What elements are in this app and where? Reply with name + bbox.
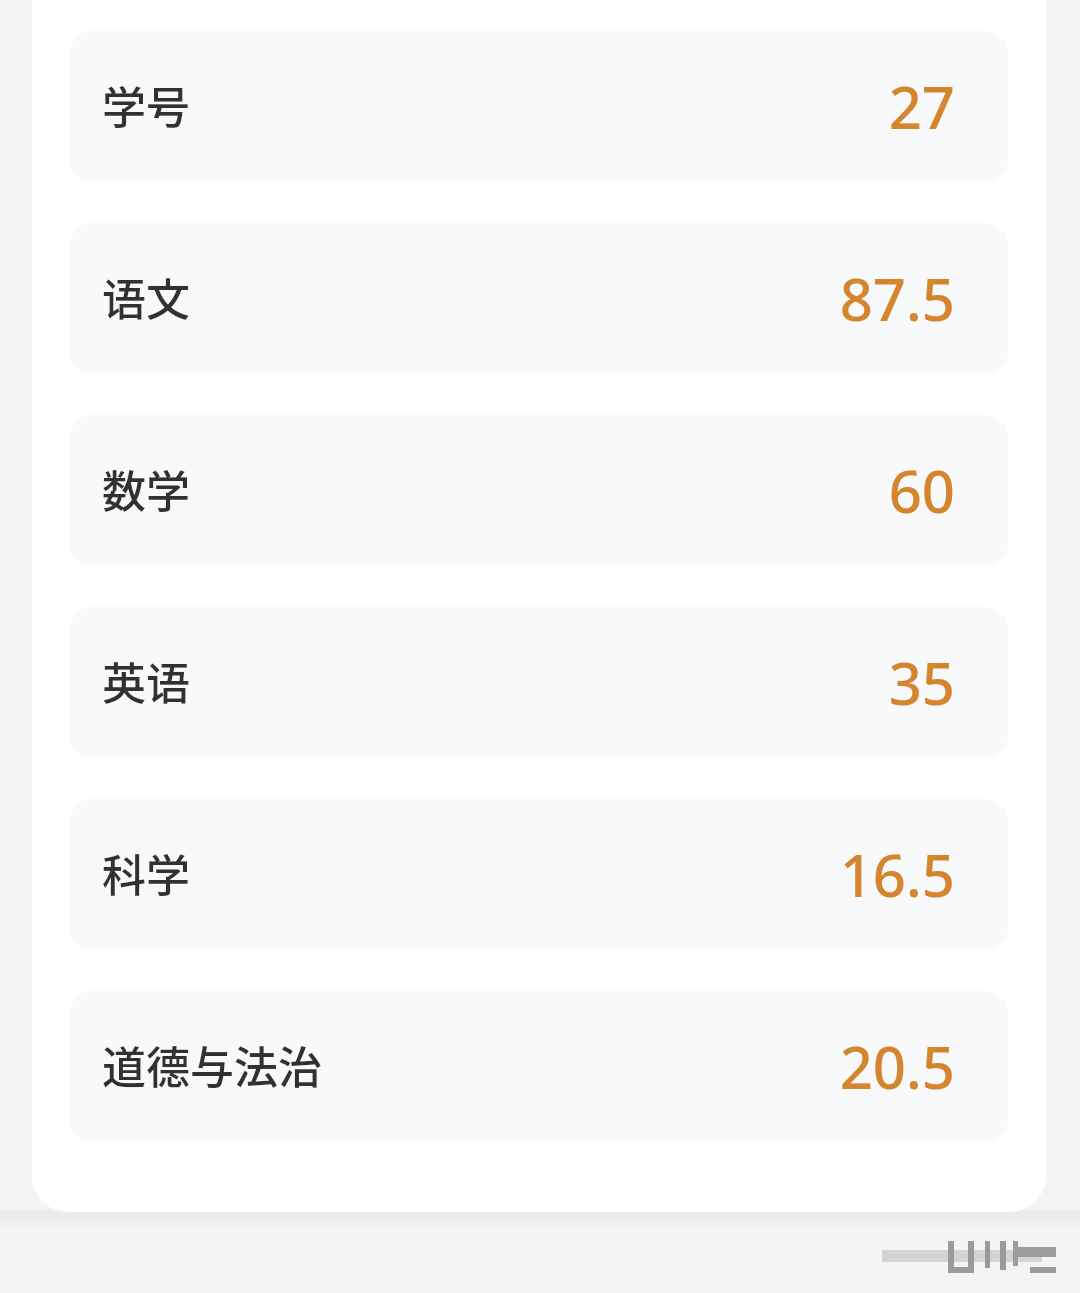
- button[interactable]: 科学: [70, 799, 1008, 951]
- button[interactable]: 道德与法治: [70, 991, 1008, 1143]
- button[interactable]: 英语: [70, 607, 1008, 759]
- staticText: 数学: [102, 457, 190, 521]
- staticText: 60: [888, 451, 955, 530]
- button[interactable]: 语文: [70, 223, 1008, 375]
- button[interactable]: 学号: [70, 31, 1008, 183]
- staticText: 20.5: [839, 1027, 955, 1106]
- staticText: 科学: [102, 841, 190, 905]
- staticText: 16.5: [839, 835, 955, 914]
- staticText: 学号: [102, 73, 190, 137]
- staticText: 语文: [102, 265, 190, 329]
- staticText: 87.5: [839, 259, 955, 338]
- staticText: 27: [888, 67, 955, 146]
- staticText: 道德与法治: [102, 1033, 322, 1097]
- staticText: 英语: [102, 649, 190, 713]
- button[interactable]: 数学: [70, 415, 1008, 567]
- staticText: 35: [888, 643, 955, 722]
